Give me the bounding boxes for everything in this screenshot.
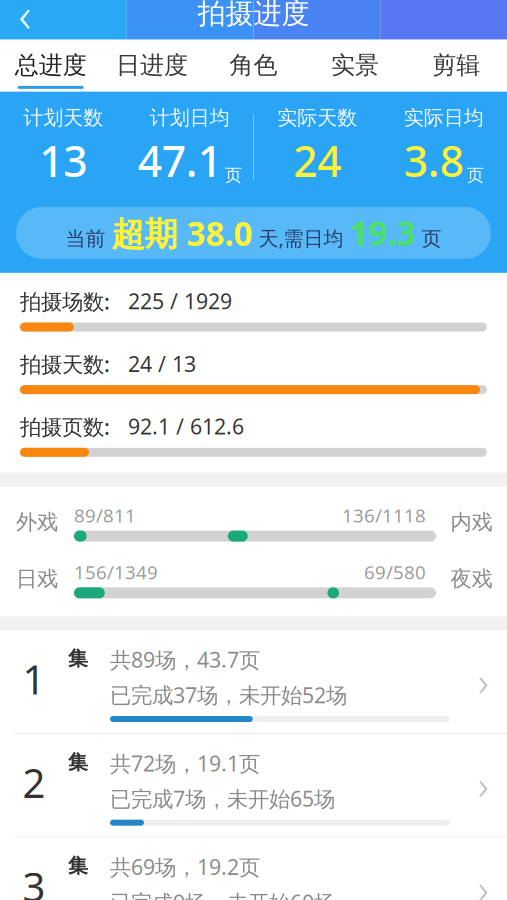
- staticText: 拍摄场数:: [20, 287, 110, 315]
- staticText: 已完成37场，未开始52场: [110, 681, 347, 709]
- staticText: 156/1349: [74, 560, 158, 584]
- staticText: 拍摄页数:: [20, 412, 110, 441]
- staticText: 超期 38.0: [111, 211, 252, 255]
- staticText: 拍摄天数:: [20, 350, 110, 378]
- button[interactable]: 3: [0, 838, 507, 900]
- staticText: 夜戏: [450, 566, 492, 592]
- staticText: 页: [467, 165, 484, 186]
- button[interactable]: 返回: [0, 0, 50, 38]
- staticText: 136/1118: [342, 503, 426, 528]
- staticText: 页: [225, 165, 242, 186]
- staticText: 3.8: [404, 132, 464, 189]
- staticText: 已完成9场，未开始60场: [110, 888, 335, 900]
- button[interactable]: 剪辑: [406, 48, 507, 92]
- staticText: 页: [415, 227, 441, 251]
- staticText: 24: [293, 132, 341, 189]
- staticText: 日戏: [16, 566, 58, 592]
- staticText: 92.1 / 612.6: [128, 412, 244, 440]
- staticText: ‹: [18, 0, 31, 45]
- staticText: 24 / 13: [128, 349, 196, 378]
- staticText: 实际日均: [404, 106, 484, 130]
- staticText: 共69场，19.2页: [110, 853, 260, 881]
- button[interactable]: 日进度: [101, 48, 203, 92]
- staticText: 集: [68, 750, 88, 775]
- staticText: 拍摄进度: [197, 0, 309, 31]
- staticText: 47.1: [138, 132, 222, 189]
- staticText: 集: [68, 854, 88, 878]
- staticText: 19.3: [349, 210, 415, 255]
- staticText: 剪辑: [432, 50, 480, 80]
- staticText: 已完成7场，未开始65场: [110, 784, 335, 813]
- button[interactable]: 2: [0, 734, 507, 838]
- staticText: 13: [39, 132, 87, 189]
- staticText: ›: [478, 862, 489, 900]
- staticText: 总进度: [15, 50, 87, 80]
- button[interactable]: 角色: [203, 48, 304, 92]
- staticText: 内戏: [450, 509, 492, 535]
- staticText: 2: [22, 756, 45, 809]
- staticText: 共72场，19.1页: [110, 749, 260, 777]
- staticText: 实际天数: [277, 106, 357, 130]
- staticText: 角色: [229, 50, 277, 80]
- staticText: 集: [68, 646, 88, 671]
- staticText: 日进度: [116, 50, 188, 80]
- staticText: 实景: [331, 50, 379, 80]
- staticText: 计划日均: [150, 106, 230, 130]
- staticText: ›: [478, 758, 489, 811]
- staticText: 共89场，43.7页: [110, 645, 260, 674]
- staticText: 天,需日均: [252, 225, 349, 251]
- staticText: 225 / 1929: [128, 287, 232, 315]
- staticText: 3: [22, 860, 45, 900]
- staticText: 外戏: [16, 509, 58, 535]
- staticText: 1: [22, 652, 45, 705]
- staticText: 89/811: [74, 503, 136, 528]
- staticText: 69/580: [364, 560, 426, 584]
- button[interactable]: 1: [0, 630, 507, 734]
- button[interactable]: 总进度: [0, 48, 101, 92]
- staticText: ›: [478, 654, 489, 707]
- button[interactable]: 实景: [304, 48, 406, 92]
- staticText: 当前: [65, 227, 111, 251]
- staticText: 计划天数: [23, 106, 103, 130]
